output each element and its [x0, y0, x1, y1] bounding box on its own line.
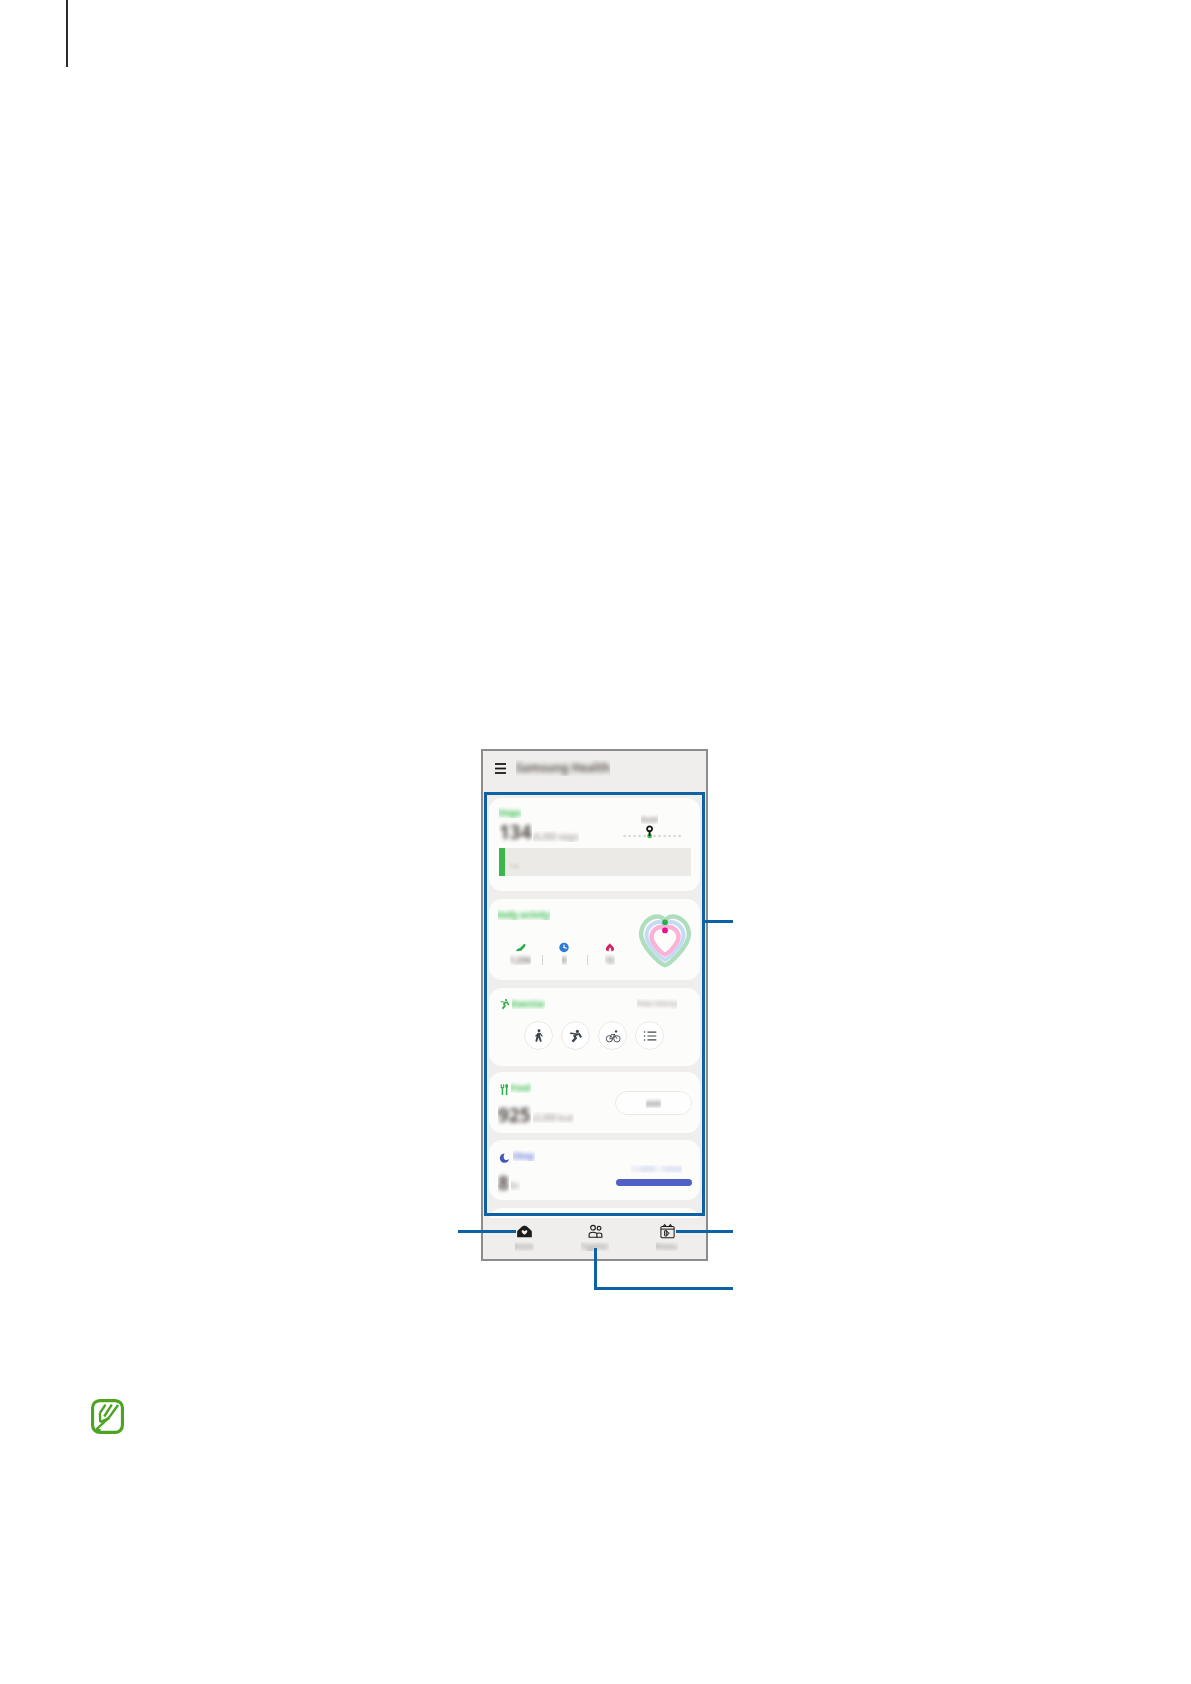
button[interactable]: Open navigation menu	[490, 758, 510, 778]
staticText: 12	[605, 954, 615, 965]
staticText: 8	[498, 1170, 509, 1196]
staticText: 12a	[509, 862, 520, 870]
staticText: 1,234	[510, 954, 531, 965]
staticText: Goal	[641, 814, 658, 824]
button[interactable]: Home	[494, 1218, 554, 1261]
button[interactable]: Running	[561, 1021, 590, 1050]
staticText: 134	[499, 819, 532, 845]
staticText: /6,000 steps	[533, 831, 579, 842]
staticText: 8	[562, 954, 567, 965]
staticText: Add	[646, 1098, 661, 1108]
staticText: Together	[581, 1242, 609, 1251]
button[interactable]: Card	[489, 1072, 700, 1133]
button[interactable]: Add	[615, 1091, 692, 1115]
button[interactable]: Card	[489, 1140, 700, 1200]
staticText: Steps	[499, 807, 521, 818]
staticText: hr	[511, 1180, 520, 1191]
staticText: Food	[511, 1082, 531, 1093]
button[interactable]: Daily activity	[489, 899, 700, 980]
staticText: Fitness	[656, 1242, 678, 1251]
staticText: /2,000 kcal	[533, 1112, 574, 1123]
staticText: Sleep	[513, 1150, 535, 1161]
staticText: Home	[515, 1242, 534, 1251]
button[interactable]: Steps	[489, 798, 700, 891]
button[interactable]: More exercises	[635, 1021, 664, 1050]
button[interactable]: Walking	[524, 1021, 553, 1050]
button[interactable]: Cycling	[598, 1021, 627, 1050]
staticText: Exercise	[512, 998, 545, 1009]
staticText: View history	[637, 999, 677, 1009]
button[interactable]: Together	[565, 1218, 625, 1261]
staticText: Samsung Health	[516, 760, 610, 776]
button[interactable]: Exercise	[489, 988, 700, 1066]
button[interactable]: Fitness	[637, 1218, 697, 1261]
staticText: Daily activity	[498, 909, 550, 920]
staticText: 925	[498, 1102, 531, 1128]
staticText: 11:00PM - 7:00AM	[631, 1165, 682, 1173]
